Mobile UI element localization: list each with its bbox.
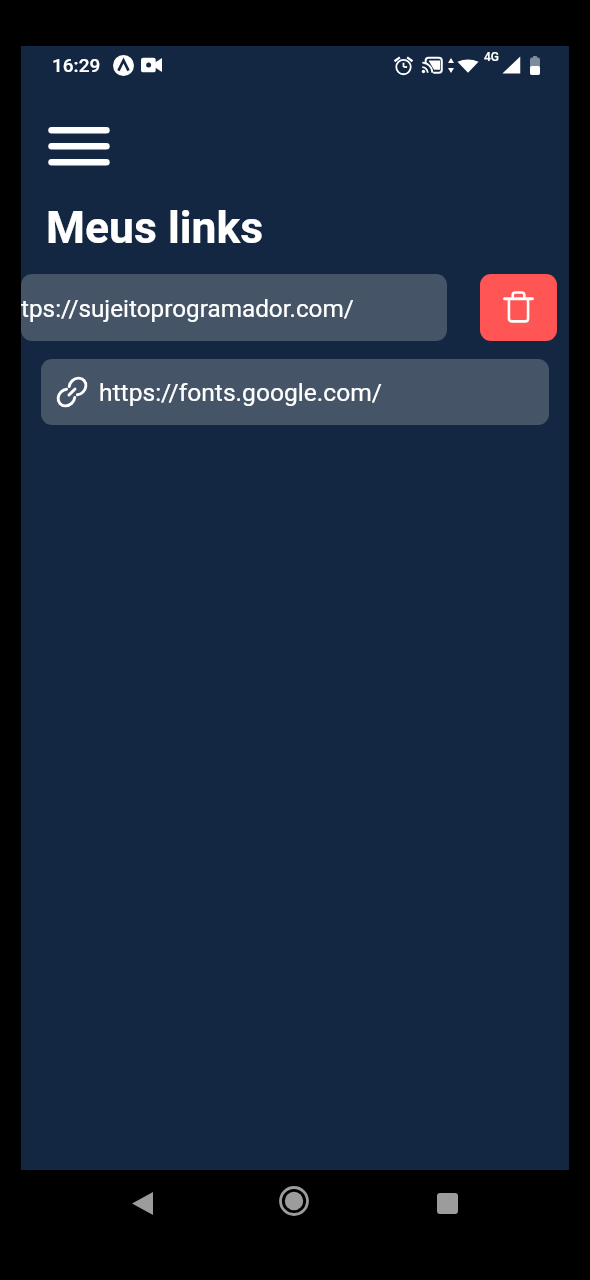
button[interactable]: Back [102, 1172, 182, 1234]
button[interactable]: Home [254, 1170, 334, 1232]
button[interactable]: https://fonts.google.com/ [41, 359, 549, 425]
button[interactable]: Menu [38, 116, 120, 176]
staticText: 16:29 [52, 54, 101, 76]
button[interactable]: Recents [407, 1172, 487, 1234]
staticText: 4G [484, 50, 499, 64]
staticText: tps://sujeitoprogramador.com/ [21, 294, 354, 322]
button[interactable]: tps://sujeitoprogramador.com/ [21, 274, 447, 341]
staticText: Meus links [46, 202, 264, 254]
button[interactable]: Delete [480, 274, 557, 341]
staticText: https://fonts.google.com/ [99, 378, 382, 407]
